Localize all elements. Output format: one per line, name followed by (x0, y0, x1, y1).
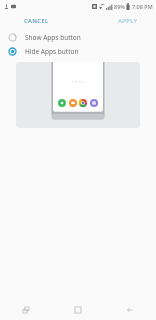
button[interactable]: APPLY (114, 15, 142, 27)
staticText: 7:08 PM (132, 3, 153, 10)
button[interactable]: Back (104, 300, 156, 320)
button[interactable]: Home (52, 300, 104, 320)
button[interactable]: Show Apps button (0, 30, 156, 44)
staticText: Hide Apps button (25, 47, 79, 56)
button[interactable]: CANCEL (20, 15, 53, 27)
staticText: Show Apps button (25, 33, 81, 42)
staticText: 89% (114, 3, 125, 10)
button[interactable]: Hide Apps button (0, 44, 156, 58)
button[interactable]: Recent apps (0, 300, 52, 320)
staticText: APPLY (118, 17, 138, 25)
staticText: CANCEL (24, 17, 49, 25)
